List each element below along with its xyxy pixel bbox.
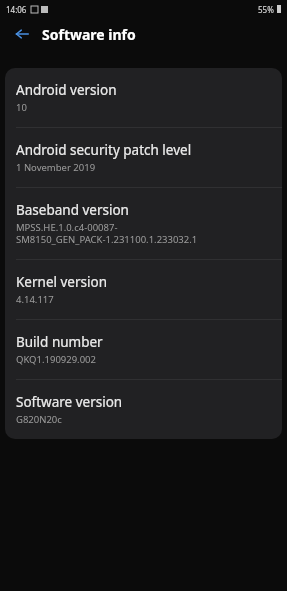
button[interactable]: Build number: [5, 320, 282, 380]
button[interactable]: Baseband version: [5, 188, 282, 260]
staticText: 4.14.117: [16, 293, 54, 306]
button[interactable]: Software version: [5, 380, 282, 439]
button[interactable]: Android security patch level: [5, 128, 282, 188]
staticText: Android version: [16, 81, 117, 99]
staticText: Android security patch level: [16, 141, 192, 159]
staticText: 10: [16, 101, 27, 114]
staticText: Build number: [16, 333, 103, 351]
staticText: 55%: [258, 4, 274, 15]
staticText: MPSS.HE.1.0.c4-00087-SM8150_GEN_PACK-1.2…: [16, 221, 271, 246]
button[interactable]: Android version: [5, 68, 282, 128]
staticText: Kernel version: [16, 273, 108, 291]
staticText: Baseband version: [16, 201, 129, 219]
button[interactable]: Back: [10, 22, 34, 46]
staticText: Software info: [42, 25, 136, 44]
staticText: 1 November 2019: [16, 161, 96, 174]
staticText: QKQ1.190929.002: [16, 353, 96, 366]
staticText: Software version: [16, 393, 123, 411]
staticText: G820N20c: [16, 413, 62, 426]
button[interactable]: Kernel version: [5, 260, 282, 320]
staticText: 14:06: [6, 4, 27, 15]
